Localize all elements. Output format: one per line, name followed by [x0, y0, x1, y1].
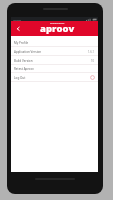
- button[interactable]: Application Version: [11, 47, 98, 56]
- staticText: Retest Aproov: [14, 67, 34, 71]
- staticText: Aproov: [13, 18, 21, 21]
- staticText: 10: [91, 59, 95, 63]
- staticText: Log Out: [14, 76, 26, 80]
- staticText: Application Version: [14, 50, 42, 54]
- button[interactable]: Log Out: [11, 73, 98, 82]
- button[interactable]: Retest Aproov: [11, 64, 98, 73]
- button[interactable]: My Profile: [11, 38, 98, 47]
- staticText: Build Version: [14, 59, 33, 63]
- staticText: aproov: [40, 22, 75, 35]
- staticText: 1.6.1: [88, 50, 95, 54]
- button[interactable]: Build Version: [11, 56, 98, 65]
- button[interactable]: Back: [13, 23, 23, 34]
- staticText: My Profile: [14, 41, 29, 45]
- staticText: CRITICALBLUE: [50, 22, 65, 24]
